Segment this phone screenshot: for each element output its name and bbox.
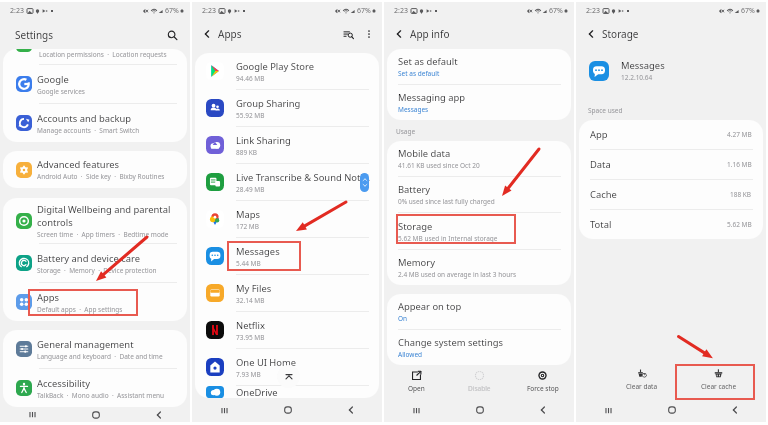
button[interactable]: Back: [319, 398, 382, 422]
staticText: 188 KB: [730, 190, 752, 199]
staticText: Set as default: [398, 69, 440, 78]
staticText: Storage: [602, 27, 639, 41]
button[interactable]: Total: [579, 210, 763, 239]
staticText: Google services: [37, 87, 85, 96]
button[interactable]: Clear cache: [687, 360, 750, 398]
staticText: 5.62 MB used in Internal storage: [398, 234, 498, 243]
button[interactable]: Recent apps: [576, 398, 640, 422]
button[interactable]: Change system settings: [387, 330, 571, 365]
staticText: Open: [408, 384, 425, 393]
staticText: Space used: [588, 106, 623, 115]
button[interactable]: Set as default: [387, 49, 571, 84]
staticText: Clear data: [626, 382, 658, 391]
staticText: Clear cache: [701, 382, 737, 391]
button[interactable]: Scroll to top: [277, 365, 300, 388]
button[interactable]: Back: [199, 26, 215, 42]
button[interactable]: Home: [256, 398, 319, 422]
button[interactable]: Battery: [387, 177, 571, 212]
staticText: 7.93 MB: [236, 370, 261, 379]
staticText: Messages: [236, 245, 280, 258]
staticText: 0% used since last fully charged: [398, 197, 495, 206]
staticText: 2:23: [10, 6, 24, 16]
button[interactable]: Live Transcribe & Sound Notifi…: [195, 164, 379, 200]
staticText: Messaging app: [398, 91, 466, 104]
button[interactable]: Force stop: [511, 365, 574, 398]
staticText: 4.27 MB: [727, 130, 752, 139]
staticText: Data: [590, 158, 611, 171]
button[interactable]: Accessibility: [3, 369, 187, 407]
button[interactable]: General management: [3, 330, 187, 368]
button[interactable]: Memory: [387, 250, 571, 285]
button[interactable]: OneDrive: [195, 386, 379, 398]
staticText: 67%: [165, 6, 179, 16]
staticText: Messages: [398, 105, 429, 114]
button[interactable]: Appear on top: [387, 294, 571, 329]
button[interactable]: Back: [703, 398, 766, 422]
button[interactable]: Back: [127, 407, 190, 422]
staticText: 73.95 MB: [236, 333, 265, 342]
button[interactable]: Back: [511, 398, 574, 422]
staticText: Appear on top: [398, 300, 462, 313]
button[interactable]: Scrollbar: [360, 173, 369, 192]
staticText: App: [590, 128, 608, 141]
staticText: Location permissions · Location requests: [39, 50, 167, 59]
button[interactable]: Sort: [340, 26, 356, 42]
staticText: Battery: [398, 183, 431, 196]
button[interactable]: Home: [448, 398, 511, 422]
staticText: 41.61 KB used since Oct 20: [398, 161, 480, 170]
button[interactable]: Disable: [448, 365, 511, 398]
button[interactable]: Google: [3, 65, 187, 103]
staticText: Battery and device care: [37, 252, 140, 265]
staticText: App info: [410, 27, 450, 41]
button[interactable]: Back: [583, 26, 599, 42]
staticText: Screen time · App timers · Bedtime mode: [37, 230, 169, 239]
button[interactable]: Maps: [195, 201, 379, 237]
button[interactable]: Data: [579, 150, 763, 179]
button[interactable]: Group Sharing: [195, 90, 379, 126]
staticText: 2:23: [586, 6, 600, 16]
staticText: 28.49 MB: [236, 185, 265, 194]
button[interactable]: Google Play Store: [195, 53, 379, 89]
staticText: 889 KB: [236, 148, 258, 157]
button[interactable]: Advanced features: [3, 151, 187, 188]
staticText: Maps: [236, 208, 261, 221]
button[interactable]: Digital Wellbeing and parental: [3, 198, 187, 243]
button[interactable]: Open: [384, 365, 448, 398]
button[interactable]: Home: [64, 407, 127, 422]
button[interactable]: Back: [391, 26, 407, 42]
button[interactable]: Clear data: [610, 360, 673, 398]
button[interactable]: Home: [640, 398, 703, 422]
button[interactable]: My Files: [195, 275, 379, 311]
button[interactable]: Link Sharing: [195, 127, 379, 163]
button[interactable]: Mobile data: [387, 141, 571, 176]
button[interactable]: Apps: [3, 283, 187, 321]
staticText: 32.14 MB: [236, 296, 265, 305]
staticText: Change system settings: [398, 336, 504, 349]
button[interactable]: Recent apps: [192, 398, 256, 422]
button[interactable]: More options: [362, 27, 376, 41]
button[interactable]: App: [579, 120, 763, 149]
staticText: Mobile data: [398, 147, 451, 160]
staticText: Digital Wellbeing and parental: [37, 203, 171, 216]
staticText: Manage accounts · Smart Switch: [37, 126, 140, 135]
button[interactable]: Battery and device care: [3, 244, 187, 282]
button[interactable]: Messaging app: [387, 85, 571, 120]
button[interactable]: Netflix: [195, 312, 379, 348]
staticText: Apps: [218, 27, 242, 41]
button[interactable]: Recent apps: [0, 407, 64, 422]
staticText: Allowed: [398, 350, 423, 359]
staticText: Default apps · App settings: [37, 305, 123, 314]
button[interactable]: Messages: [195, 238, 379, 274]
button[interactable]: Cache: [579, 180, 763, 209]
button[interactable]: One UI Home: [195, 349, 379, 385]
staticText: One UI Home: [236, 356, 297, 369]
button[interactable]: Recent apps: [384, 398, 448, 422]
staticText: 67%: [741, 6, 755, 16]
staticText: Messages: [621, 59, 665, 72]
staticText: OneDrive: [236, 386, 278, 398]
button[interactable]: Accounts and backup: [3, 104, 187, 142]
staticText: Google: [37, 73, 69, 86]
staticText: controls: [37, 216, 73, 229]
button[interactable]: Storage: [387, 213, 571, 249]
button[interactable]: Search: [164, 27, 180, 43]
